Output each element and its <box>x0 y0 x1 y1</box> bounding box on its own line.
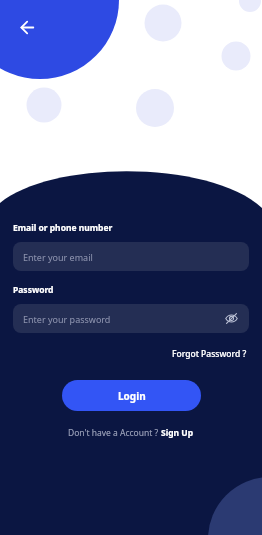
button[interactable]: Back <box>12 12 42 42</box>
button[interactable]: Enter your email <box>13 242 249 271</box>
staticText: Don't have a Account ? <box>68 427 161 439</box>
staticText: Enter your email <box>23 251 93 263</box>
staticText: Sign Up <box>161 427 194 439</box>
button[interactable]: Login <box>62 380 201 411</box>
staticText: Password <box>13 284 54 296</box>
staticText: Enter your password <box>23 313 111 325</box>
button[interactable]: Show password <box>223 310 240 327</box>
staticText: Forgot Password ? <box>172 348 247 360</box>
button[interactable]: Forgot Password ? <box>170 346 249 362</box>
button[interactable]: Enter your password <box>13 304 249 333</box>
button[interactable]: Don't have a Account ? <box>66 425 196 441</box>
staticText: Email or phone number <box>13 222 113 234</box>
staticText: Login <box>118 389 146 403</box>
